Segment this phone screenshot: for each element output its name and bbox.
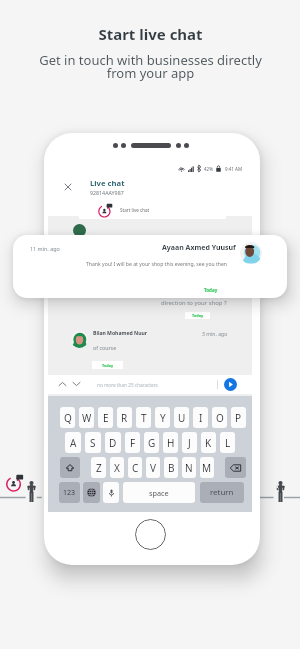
button[interactable]: Shift [60, 457, 80, 478]
button[interactable]: L [220, 432, 235, 453]
button[interactable]: J [182, 432, 197, 453]
button[interactable]: 123 [59, 482, 80, 503]
button[interactable]: E [98, 407, 113, 428]
staticText: return [210, 487, 234, 498]
staticText: F [130, 436, 136, 450]
staticText: W [82, 411, 92, 425]
button[interactable]: W [79, 407, 94, 428]
button[interactable]: Start live chat [79, 200, 226, 219]
staticText: Get in touch with businesses directly fr… [39, 51, 262, 82]
button[interactable]: V [146, 457, 160, 478]
staticText: V [150, 461, 156, 475]
staticText: M [202, 461, 212, 475]
staticText: no more than 25 characters [97, 382, 158, 388]
button[interactable]: Y [155, 407, 170, 428]
staticText: Start live chat [98, 24, 203, 44]
staticText: U [178, 411, 186, 425]
staticText: 42% [204, 166, 213, 172]
button[interactable]: R [117, 407, 132, 428]
staticText: Live chat [90, 178, 125, 188]
staticText: Bilan Mohamed Nuur [93, 330, 148, 337]
staticText: Today [192, 313, 204, 318]
button[interactable]: O [212, 407, 227, 428]
staticText: R [121, 411, 128, 425]
staticText: N [185, 461, 193, 475]
staticText: Z [96, 461, 102, 475]
button[interactable]: F [125, 432, 140, 453]
button[interactable]: Delete [225, 457, 246, 478]
button[interactable]: Z [91, 457, 106, 478]
staticText: 9:41 AM [225, 166, 243, 172]
staticText: K [205, 436, 212, 450]
staticText: P [235, 411, 242, 425]
staticText: E [103, 411, 109, 425]
button[interactable]: Language [83, 482, 100, 503]
staticText: J [188, 436, 191, 450]
staticText: Q [64, 411, 72, 425]
button[interactable]: I [193, 407, 208, 428]
button[interactable]: K [201, 432, 216, 453]
button[interactable]: G [144, 432, 159, 453]
staticText: Ayaan Axmed Yuusuf [162, 243, 236, 253]
staticText: 11 min. ago [30, 245, 60, 252]
staticText: A [70, 436, 77, 450]
staticText: Today [204, 287, 218, 293]
staticText: L [225, 436, 231, 450]
staticText: Thank you! I will be at your shop this e… [86, 261, 228, 268]
button[interactable]: A [65, 432, 81, 453]
button[interactable]: return [200, 482, 244, 503]
button[interactable]: Next [72, 379, 81, 388]
button[interactable]: H [163, 432, 178, 453]
staticText: B [168, 461, 175, 475]
staticText: space [149, 488, 169, 498]
staticText: S [90, 436, 96, 450]
button[interactable]: S [85, 432, 101, 453]
staticText: 92814AAY987 [90, 189, 124, 196]
button[interactable]: Previous [58, 379, 67, 388]
staticText: X [114, 461, 120, 475]
button[interactable]: B [164, 457, 178, 478]
staticText: 3 min. ago [202, 331, 228, 338]
staticText: T [141, 411, 147, 425]
staticText: D [109, 436, 117, 450]
staticText: G [148, 436, 156, 450]
button[interactable]: space [123, 482, 195, 503]
staticText: of course [93, 344, 117, 351]
button[interactable]: Close [62, 181, 74, 193]
button[interactable]: T [136, 407, 151, 428]
staticText: 123 [63, 488, 76, 498]
staticText: C [132, 461, 139, 475]
button[interactable]: Send [224, 378, 237, 391]
staticText: Y [160, 411, 166, 425]
button[interactable]: U [174, 407, 189, 428]
button[interactable]: X [110, 457, 124, 478]
button[interactable]: N [182, 457, 196, 478]
staticText: Today [102, 363, 114, 368]
button[interactable]: Home [135, 519, 166, 550]
staticText: Start live chat [120, 207, 150, 213]
staticText: H [167, 436, 175, 450]
staticText: I [199, 411, 203, 425]
button[interactable]: 11 min. ago [13, 235, 287, 298]
button[interactable]: P [231, 407, 246, 428]
button[interactable]: D [105, 432, 121, 453]
staticText: direction to your shop ? [161, 299, 227, 307]
button[interactable]: Voice input [103, 482, 119, 503]
button[interactable]: Q [60, 407, 75, 428]
button[interactable]: C [128, 457, 142, 478]
staticText: O [216, 411, 224, 425]
button[interactable]: M [200, 457, 214, 478]
